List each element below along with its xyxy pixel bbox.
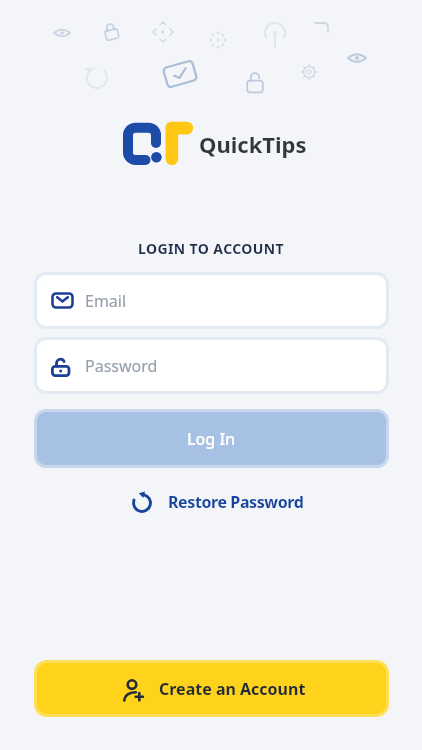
button[interactable]: Password [37,340,386,391]
staticText: Restore Password [168,491,304,513]
button[interactable]: Create an Account [37,663,386,714]
staticText: Password [85,355,158,377]
button[interactable]: Email [37,275,386,326]
staticText: Email [85,290,127,312]
staticText: LOGIN TO ACCOUNT [138,239,285,258]
staticText: Create an Account [159,678,306,700]
button[interactable]: Restore Password [130,490,304,513]
staticText: QuickTips [199,129,307,159]
staticText: Log In [187,428,236,450]
button[interactable]: Log In [37,412,386,465]
